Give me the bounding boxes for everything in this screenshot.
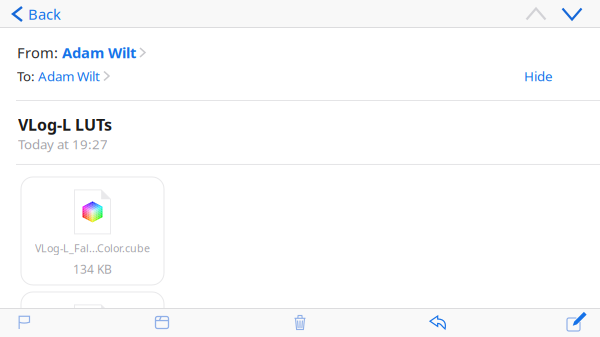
button[interactable]: Previous Message — [518, 0, 554, 28]
button[interactable]: Adam Wilt — [62, 43, 145, 62]
staticText: Hide — [524, 67, 553, 85]
staticText: 134 KB — [73, 261, 112, 277]
staticText: VLog-L LUTs — [18, 114, 112, 135]
button[interactable]: Reply — [421, 308, 455, 337]
staticText: VLog-L_Fal...Color.cube — [35, 241, 150, 255]
button[interactable]: Delete — [283, 308, 317, 337]
button[interactable]: Adam Wilt — [38, 67, 109, 85]
button[interactable]: VLog-L_Fal...Color.cube — [21, 177, 164, 285]
button[interactable]: Back — [0, 0, 71, 28]
button[interactable]: Next Message — [554, 0, 590, 28]
staticText: Today at 19:27 — [18, 135, 108, 153]
staticText: Back — [28, 4, 61, 24]
button[interactable]: VLog-L_Fal...Color.cube — [21, 292, 164, 337]
button[interactable]: Move Message — [145, 308, 179, 337]
staticText: From: — [17, 43, 62, 62]
button[interactable]: Hide — [514, 65, 563, 87]
button[interactable]: Flag — [7, 308, 41, 337]
staticText: Adam Wilt — [38, 67, 100, 85]
button[interactable]: Compose — [559, 308, 593, 337]
staticText: To: — [17, 67, 38, 85]
staticText: Adam Wilt — [62, 43, 136, 62]
